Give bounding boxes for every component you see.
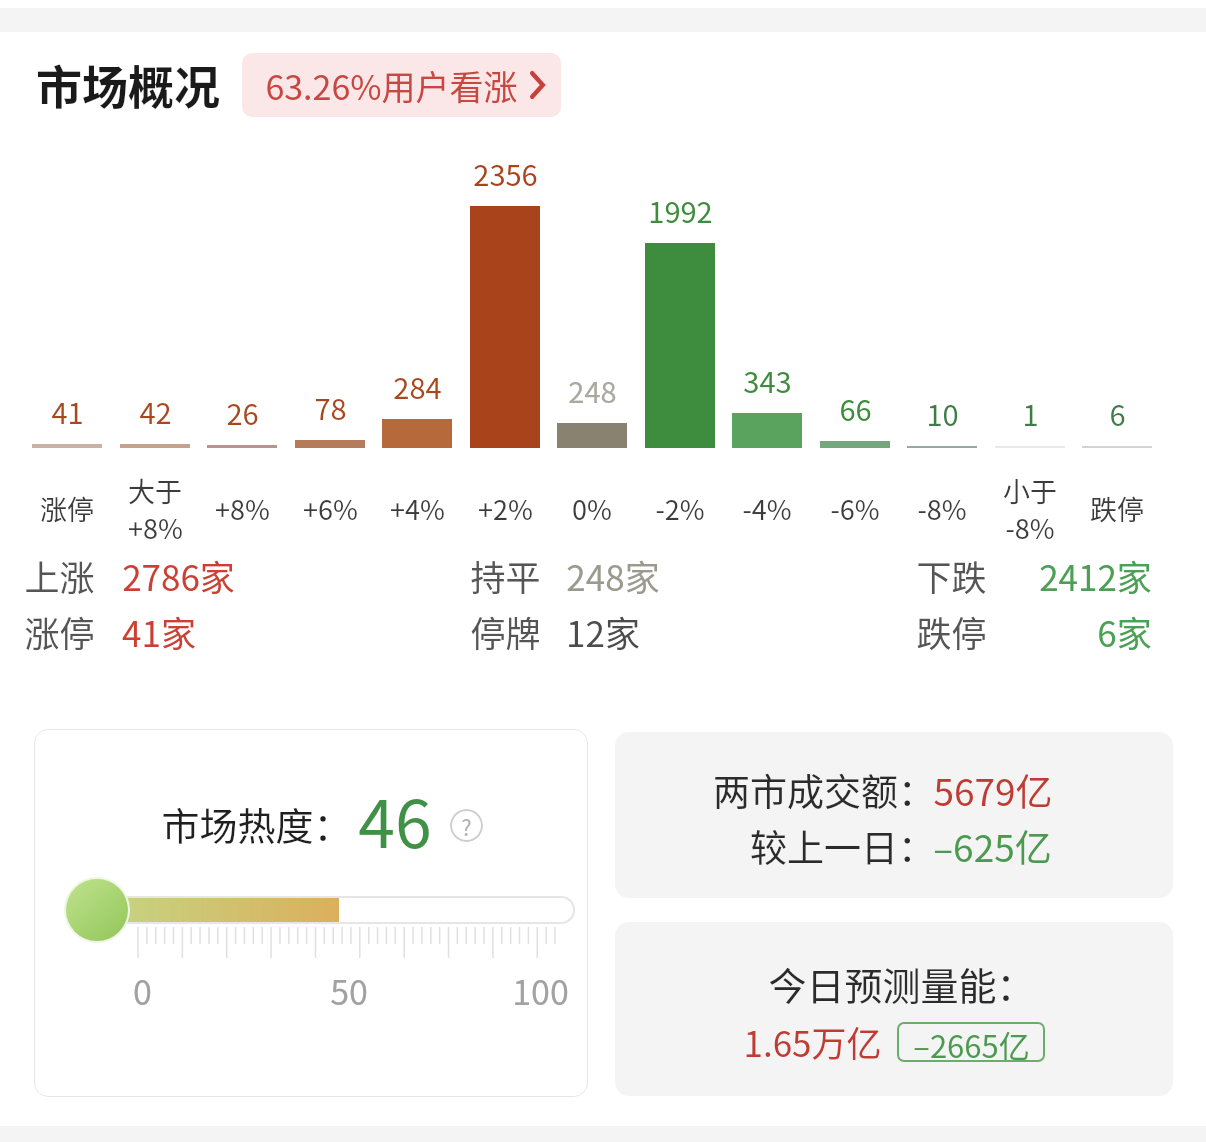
staticText: 6 [1109,392,1126,434]
staticText: +2% [478,489,533,528]
staticText: -8% [917,489,967,528]
button[interactable]: 两市成交额： [615,732,1173,898]
staticText: 5679亿 [933,763,1053,817]
button[interactable]: 市场热度说明 [450,809,483,842]
staticText: 100 [512,966,569,1015]
staticText: –2665亿 [913,1022,1030,1062]
staticText: 10 [926,392,959,434]
staticText: 今日预测量能： [768,956,1035,1011]
staticText: 2412家 [1039,550,1152,601]
staticText: 市场概况 [36,51,220,118]
staticText: 41 [51,390,84,432]
staticText: 涨停 [40,489,94,528]
staticText: +8% [215,489,270,528]
staticText: 跌停 [916,606,987,657]
staticText: 停牌 [470,606,541,657]
staticText: 248家 [566,550,660,601]
staticText: 1 [1022,392,1039,434]
staticText: -8% [1005,508,1055,547]
staticText: 248 [568,369,617,411]
staticText: 小于 [1003,471,1057,510]
staticText: +4% [390,489,445,528]
staticText: 6家 [1097,606,1152,657]
staticText: 下跌 [916,550,987,601]
staticText: -4% [742,489,792,528]
staticText: 26 [226,391,259,433]
button[interactable]: 63.26%用户看涨 [242,53,561,117]
staticText: +8% [128,508,183,547]
staticText: 较上一日： [750,819,935,873]
staticText: 78 [314,386,347,428]
staticText: 12家 [566,606,640,657]
staticText: 41家 [122,606,196,657]
staticText: 0% [572,489,612,528]
staticText: -2% [655,489,705,528]
staticText: 涨停 [24,606,95,657]
staticText: 63.26%用户看涨 [265,61,518,110]
staticText: +6% [303,489,358,528]
staticText: 上涨 [24,550,95,601]
staticText: 284 [393,365,442,407]
staticText: –625亿 [933,819,1052,873]
staticText: ? [461,810,472,842]
staticText: 46 [358,771,432,867]
staticText: 50 [330,966,368,1015]
staticText: 1.65万亿 [743,1016,882,1067]
staticText: -6% [830,489,880,528]
staticText: 两市成交额： [713,763,935,817]
staticText: 1992 [648,189,713,231]
staticText: 2786家 [122,550,235,601]
staticText: 66 [839,387,872,429]
staticText: 2356 [473,152,538,194]
staticText: 持平 [470,550,541,601]
staticText: 市场热度： [161,796,352,851]
button[interactable]: 市场热度： [34,729,588,1097]
staticText: 343 [743,359,792,401]
button[interactable]: 今日预测量能： [615,922,1173,1096]
staticText: 跌停 [1090,489,1144,528]
staticText: 0 [133,966,152,1015]
staticText: 大于 [128,471,182,510]
staticText: 42 [139,390,172,432]
